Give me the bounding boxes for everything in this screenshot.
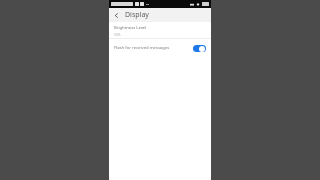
staticText: Brightness Level — [114, 25, 147, 31]
staticText: Display — [125, 10, 149, 20]
staticText: 50% — [114, 33, 121, 37]
button[interactable]: Brightness Level — [109, 22, 211, 38]
button[interactable]: Flash for received messages — [109, 41, 211, 55]
button[interactable]: Flash for received messages toggle — [193, 45, 206, 52]
button[interactable]: Back — [109, 8, 123, 22]
staticText: Flash for received messages — [114, 45, 190, 51]
